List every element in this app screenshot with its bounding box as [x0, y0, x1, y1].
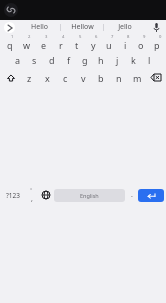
- staticText: t: [75, 39, 79, 51]
- staticText: i: [124, 39, 127, 51]
- staticText: °: [30, 187, 33, 194]
- button[interactable]: ?123: [2, 88, 24, 302]
- staticText: 3: [45, 34, 48, 40]
- staticText: 4: [62, 34, 65, 40]
- button[interactable]: 7: [101, 34, 117, 51]
- button[interactable]: 1: [1, 34, 18, 51]
- staticText: g: [82, 54, 88, 66]
- staticText: x: [45, 72, 50, 84]
- button[interactable]: 3: [35, 34, 52, 51]
- button[interactable]: Hello: [18, 20, 60, 34]
- staticText: s: [32, 54, 37, 66]
- staticText: v: [81, 72, 86, 84]
- button[interactable]: x: [38, 68, 56, 87]
- staticText: o: [138, 39, 144, 51]
- button[interactable]: 0: [149, 34, 165, 51]
- staticText: u: [106, 39, 112, 51]
- staticText: j: [116, 54, 119, 66]
- button[interactable]: j: [109, 51, 125, 68]
- staticText: l: [148, 54, 151, 66]
- staticText: 1: [11, 34, 14, 40]
- button[interactable]: Backspace: [146, 68, 165, 87]
- staticText: 2: [28, 34, 31, 40]
- button[interactable]: s: [26, 51, 43, 68]
- staticText: e: [41, 39, 47, 51]
- staticText: 0: [159, 34, 162, 40]
- button[interactable]: 9: [133, 34, 149, 51]
- staticText: ?123: [6, 191, 20, 200]
- button[interactable]: z: [20, 68, 38, 87]
- button[interactable]: h: [93, 51, 109, 68]
- button[interactable]: a: [9, 51, 26, 68]
- button[interactable]: n: [110, 68, 128, 87]
- staticText: z: [27, 72, 32, 84]
- staticText: Jello: [118, 22, 132, 32]
- staticText: .: [131, 190, 133, 200]
- staticText: 8: [127, 34, 130, 40]
- button[interactable]: Attach link: [4, 3, 18, 17]
- staticText: b: [98, 72, 104, 84]
- button[interactable]: 5: [69, 34, 85, 51]
- staticText: English: [80, 192, 99, 199]
- staticText: a: [15, 54, 21, 66]
- staticText: r: [59, 39, 63, 51]
- button[interactable]: Enter: [138, 189, 164, 202]
- staticText: h: [98, 54, 104, 66]
- button[interactable]: 4: [52, 34, 69, 51]
- staticText: y: [91, 39, 96, 51]
- staticText: n: [116, 72, 122, 84]
- staticText: ,: [31, 194, 33, 204]
- button[interactable]: d: [43, 51, 60, 68]
- staticText: 7: [111, 34, 114, 40]
- button[interactable]: g: [77, 51, 93, 68]
- button[interactable]: More suggestions: [0, 20, 18, 34]
- staticText: Hellow: [71, 22, 94, 32]
- button[interactable]: m: [128, 68, 146, 87]
- staticText: q: [7, 39, 13, 51]
- staticText: 5: [79, 34, 82, 40]
- staticText: w: [23, 39, 31, 51]
- button[interactable]: c: [56, 68, 74, 87]
- button[interactable]: 8: [117, 34, 133, 51]
- staticText: m: [133, 72, 142, 84]
- button[interactable]: Hellow: [61, 20, 103, 34]
- button[interactable]: b: [92, 68, 110, 87]
- button[interactable]: 2: [18, 34, 35, 51]
- button[interactable]: 6: [85, 34, 101, 51]
- staticText: Hello: [31, 22, 48, 32]
- button[interactable]: Space: [54, 189, 125, 202]
- staticText: d: [49, 54, 55, 66]
- staticText: k: [131, 54, 136, 66]
- button[interactable]: k: [125, 51, 141, 68]
- button[interactable]: f: [60, 51, 77, 68]
- staticText: c: [63, 72, 68, 84]
- staticText: 6: [95, 34, 98, 40]
- staticText: p: [154, 39, 160, 51]
- button[interactable]: Shift: [1, 68, 20, 87]
- staticText: f: [67, 54, 71, 66]
- button[interactable]: Jello: [104, 20, 146, 34]
- button[interactable]: l: [141, 51, 157, 68]
- button[interactable]: Voice input: [146, 20, 166, 34]
- button[interactable]: Change language: [38, 88, 54, 302]
- staticText: 9: [143, 34, 146, 40]
- button[interactable]: v: [74, 68, 92, 87]
